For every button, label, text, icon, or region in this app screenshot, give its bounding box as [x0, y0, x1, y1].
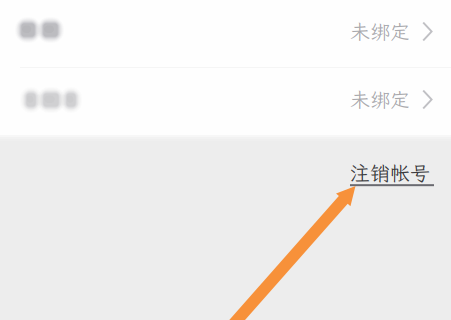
- staticText: 未绑定: [350, 86, 410, 113]
- button[interactable]: 未绑定: [0, 68, 451, 135]
- staticText: 未绑定: [350, 18, 410, 45]
- button[interactable]: 注销帐号: [350, 156, 451, 190]
- staticText: 注销帐号: [350, 160, 430, 186]
- button[interactable]: 未绑定: [0, 0, 451, 67]
